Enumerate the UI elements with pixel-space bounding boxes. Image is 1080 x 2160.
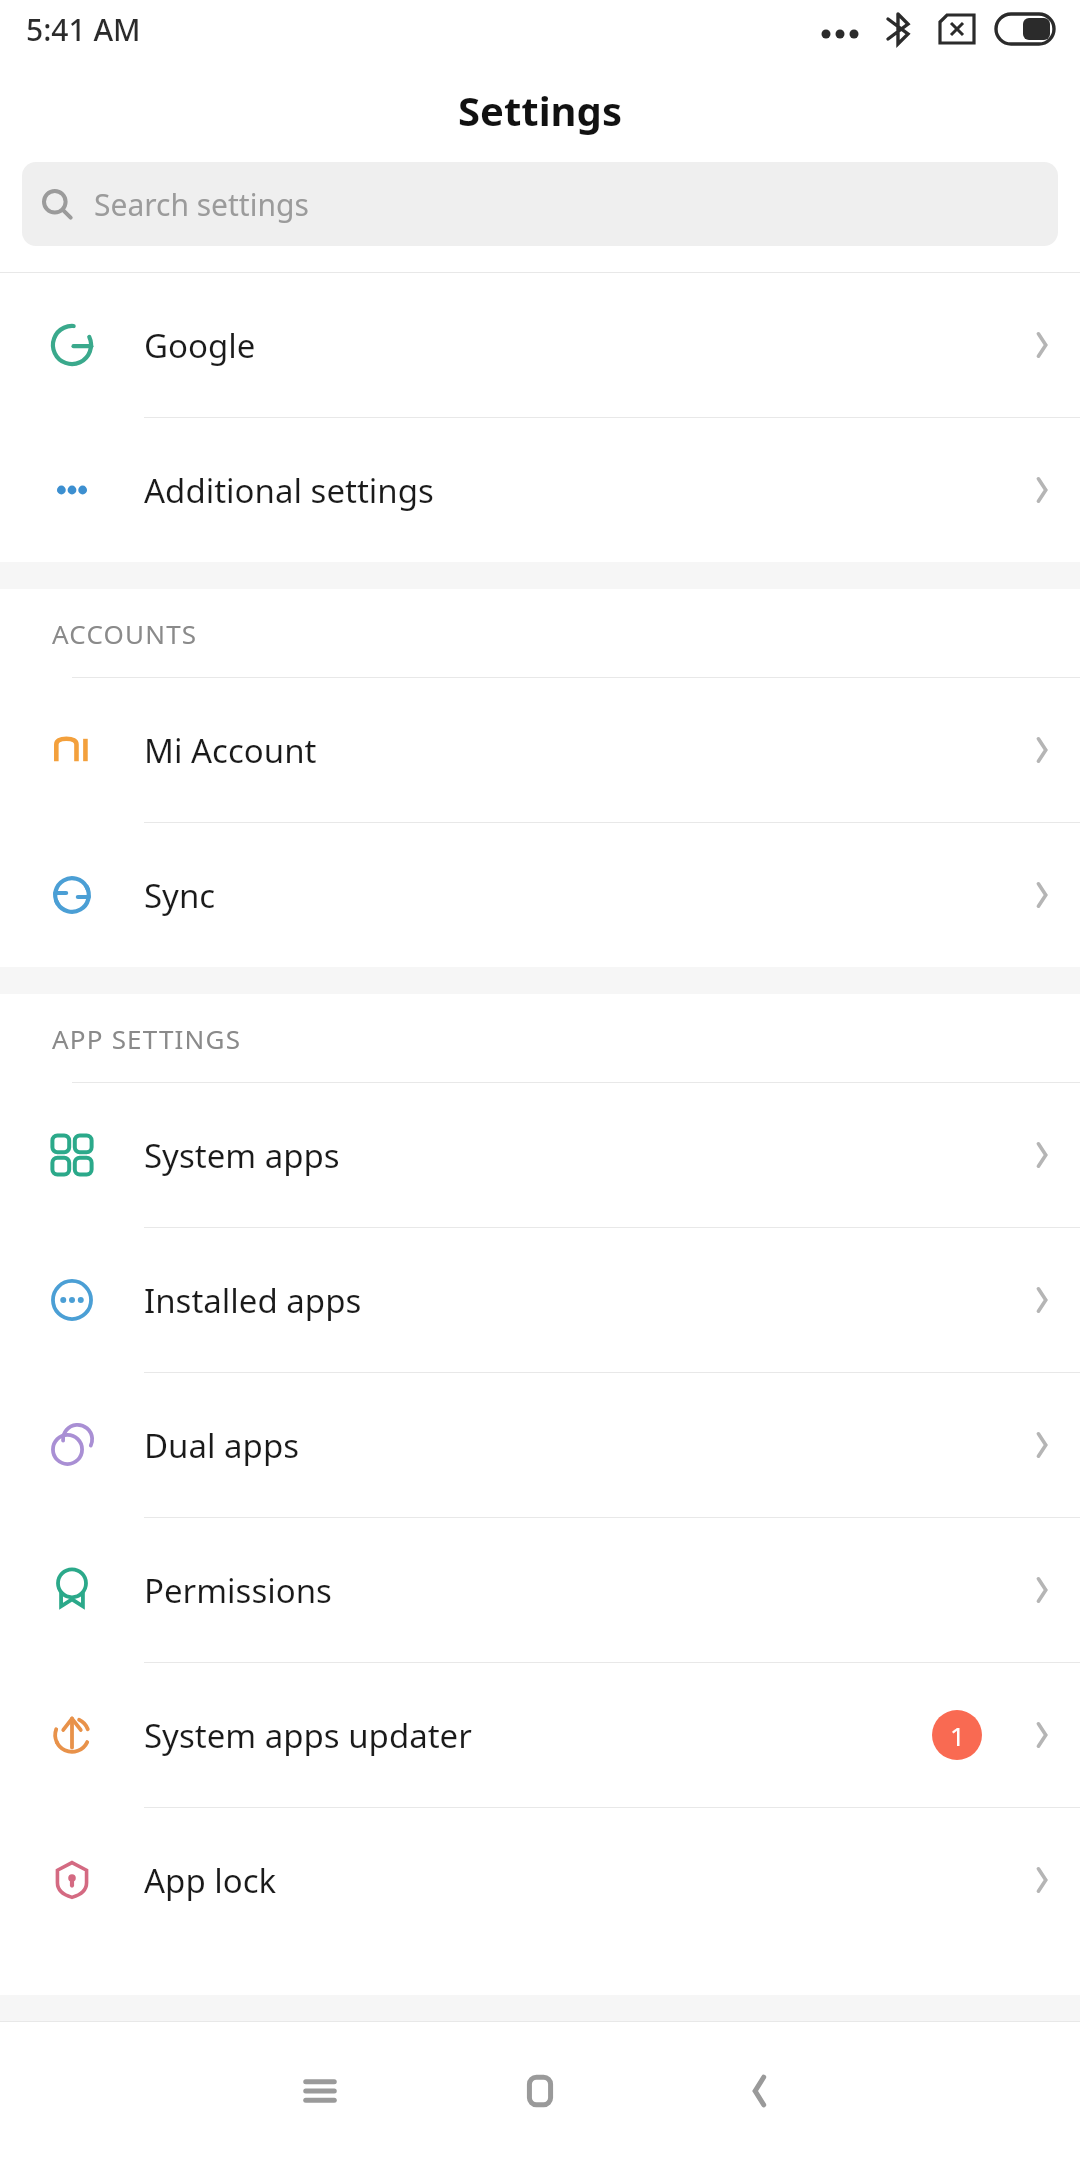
button[interactable]: Mi Account bbox=[0, 678, 1080, 822]
staticText: Dual apps bbox=[144, 1423, 300, 1468]
button[interactable]: Google bbox=[0, 273, 1080, 417]
staticText: Settings bbox=[458, 83, 622, 137]
staticText: System apps updater bbox=[144, 1713, 472, 1758]
staticText: ACCOUNTS bbox=[52, 616, 198, 651]
button[interactable]: Recents bbox=[210, 2022, 430, 2160]
button[interactable]: Dual apps bbox=[0, 1373, 1080, 1517]
staticText: 1 bbox=[950, 1718, 965, 1753]
staticText: Installed apps bbox=[144, 1278, 362, 1323]
staticText: Permissions bbox=[144, 1568, 332, 1613]
button[interactable]: System apps updater bbox=[0, 1663, 1080, 1807]
button[interactable]: Installed apps bbox=[0, 1228, 1080, 1372]
staticText: App lock bbox=[144, 1858, 277, 1903]
button[interactable]: Sync bbox=[0, 823, 1080, 967]
staticText: Sync bbox=[144, 873, 216, 918]
button[interactable]: Additional settings bbox=[0, 418, 1080, 562]
staticText: Mi Account bbox=[144, 728, 317, 773]
button[interactable]: Home bbox=[430, 2022, 650, 2160]
button[interactable]: Back bbox=[650, 2022, 870, 2160]
staticText: Google bbox=[144, 323, 256, 368]
staticText: 5:41 AM bbox=[26, 9, 141, 50]
button[interactable]: Search settings bbox=[22, 162, 1058, 246]
staticText: Additional settings bbox=[144, 468, 434, 513]
staticText: APP SETTINGS bbox=[52, 1021, 242, 1056]
button[interactable]: App lock bbox=[0, 1808, 1080, 1952]
staticText: Search settings bbox=[94, 184, 309, 225]
staticText: System apps bbox=[144, 1133, 340, 1178]
button[interactable]: System apps bbox=[0, 1083, 1080, 1227]
button[interactable]: Permissions bbox=[0, 1518, 1080, 1662]
